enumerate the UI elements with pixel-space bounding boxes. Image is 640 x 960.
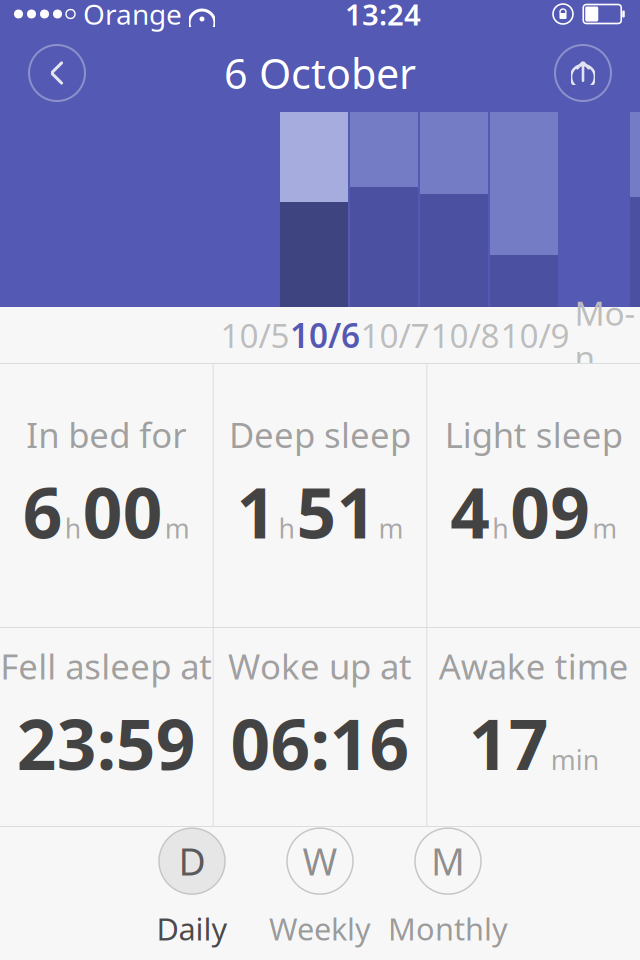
staticText: 10/9 (500, 313, 569, 357)
button[interactable]: 10/8 (430, 307, 500, 363)
staticText: 06:16 (230, 697, 409, 789)
staticText: h (278, 510, 294, 546)
staticText: Light sleep (445, 411, 623, 457)
staticText: W (302, 836, 337, 886)
staticText: In bed for (26, 411, 186, 457)
button[interactable]: Mon (570, 307, 640, 363)
staticText: h (492, 510, 508, 546)
staticText: 13:24 (345, 0, 421, 33)
staticText: m (378, 510, 403, 546)
staticText: 51 (296, 465, 376, 558)
button[interactable]: Share (552, 42, 614, 104)
staticText: D (178, 836, 205, 886)
staticText: h (65, 510, 81, 546)
button[interactable]: W (256, 828, 384, 949)
staticText: 10/6 (290, 313, 360, 357)
staticText: 1 (236, 465, 276, 558)
staticText: 10/5 (220, 313, 289, 357)
staticText: Fell asleep at (0, 643, 212, 689)
staticText: 10/7 (360, 313, 429, 357)
staticText: 23:59 (17, 697, 196, 789)
staticText: 17 (469, 697, 549, 789)
staticText: m (165, 510, 190, 546)
button[interactable]: M (384, 828, 512, 949)
staticText: Awake time (439, 643, 629, 689)
staticText: Weekly (269, 908, 371, 949)
staticText: Orange (83, 0, 182, 33)
staticText: 10/8 (430, 313, 499, 357)
button[interactable]: Back (26, 42, 88, 104)
button[interactable]: 10/9 (500, 307, 570, 363)
staticText: 6 October (224, 46, 416, 100)
button[interactable]: 10/6 (290, 307, 360, 363)
staticText: Daily (156, 908, 227, 949)
staticText: Woke up at (228, 643, 412, 689)
staticText: 09 (510, 465, 590, 558)
staticText: Deep sleep (229, 411, 411, 457)
button[interactable]: D (128, 828, 256, 949)
staticText: 00 (83, 465, 163, 558)
staticText: 4 (450, 465, 490, 558)
staticText: Monthly (388, 908, 508, 949)
staticText: Mon (574, 291, 635, 379)
button[interactable]: 10/7 (360, 307, 430, 363)
staticText: 6 (23, 465, 63, 558)
staticText: min (551, 742, 599, 777)
staticText: M (431, 836, 465, 886)
button[interactable]: 10/5 (220, 307, 290, 363)
staticText: m (592, 510, 617, 546)
